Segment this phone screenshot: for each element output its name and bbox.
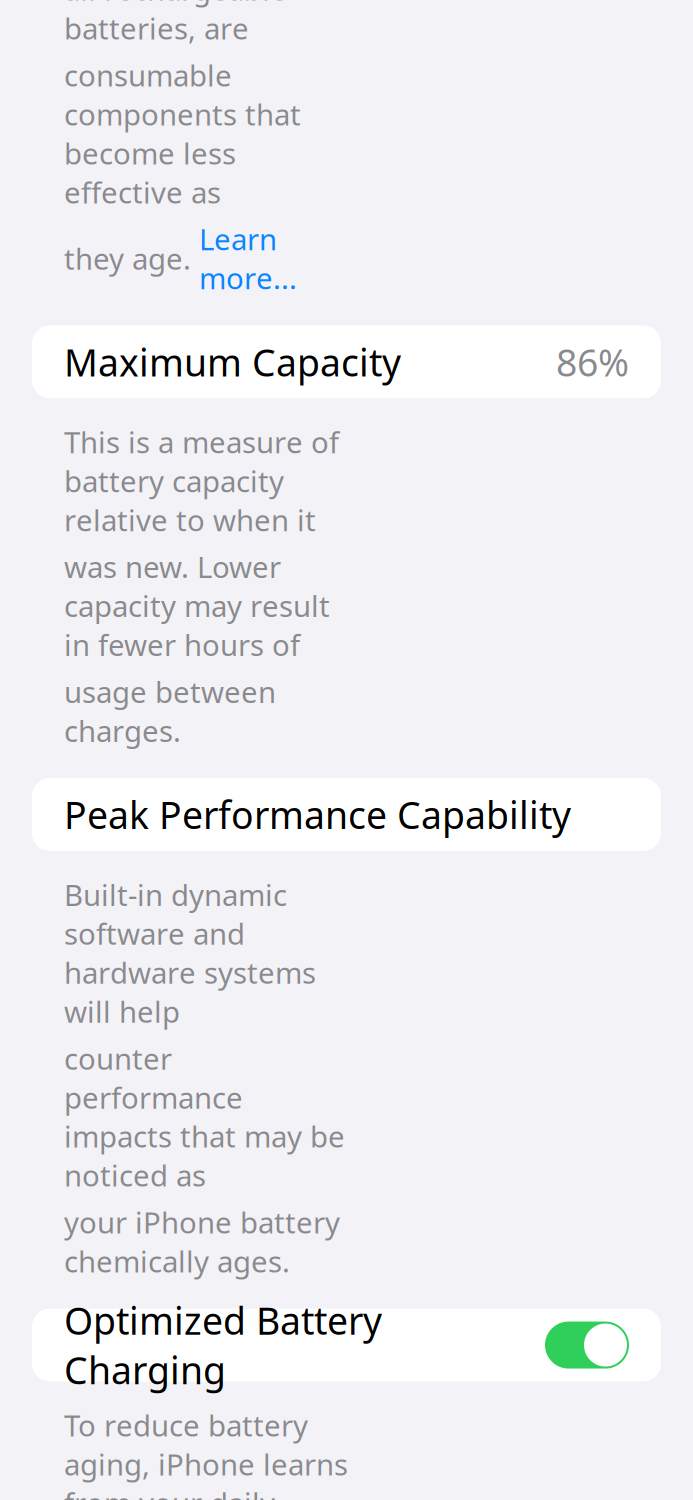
staticText: Peak Performance Capability [64,790,571,839]
button[interactable]: Peak Performance Capability [32,778,661,851]
button[interactable]: Learn more... [199,219,297,297]
staticText: they age. [64,239,199,278]
staticText: was new. Lower capacity may result in fe… [64,547,330,664]
staticText: your iPhone battery chemically ages. [64,1203,340,1281]
button[interactable]: Optimized Battery Charging [545,1322,629,1369]
staticText: consumable components that become less e… [64,56,301,211]
staticText: Optimized Battery Charging [64,1295,382,1395]
staticText: Maximum Capacity [64,337,401,387]
staticText: counter performance impacts that may be … [64,1039,345,1195]
staticText: Learn more... [199,219,297,297]
staticText: Built-in dynamic software and hardware s… [64,875,316,1031]
staticText: This is a measure of battery capacity re… [64,422,339,539]
staticText: 86% [556,337,629,387]
staticText: To reduce battery aging, iPhone learns f… [64,1406,348,1500]
staticText: usage between charges. [64,672,276,750]
staticText: Phone batteries, like all rechargeable b… [64,0,350,48]
